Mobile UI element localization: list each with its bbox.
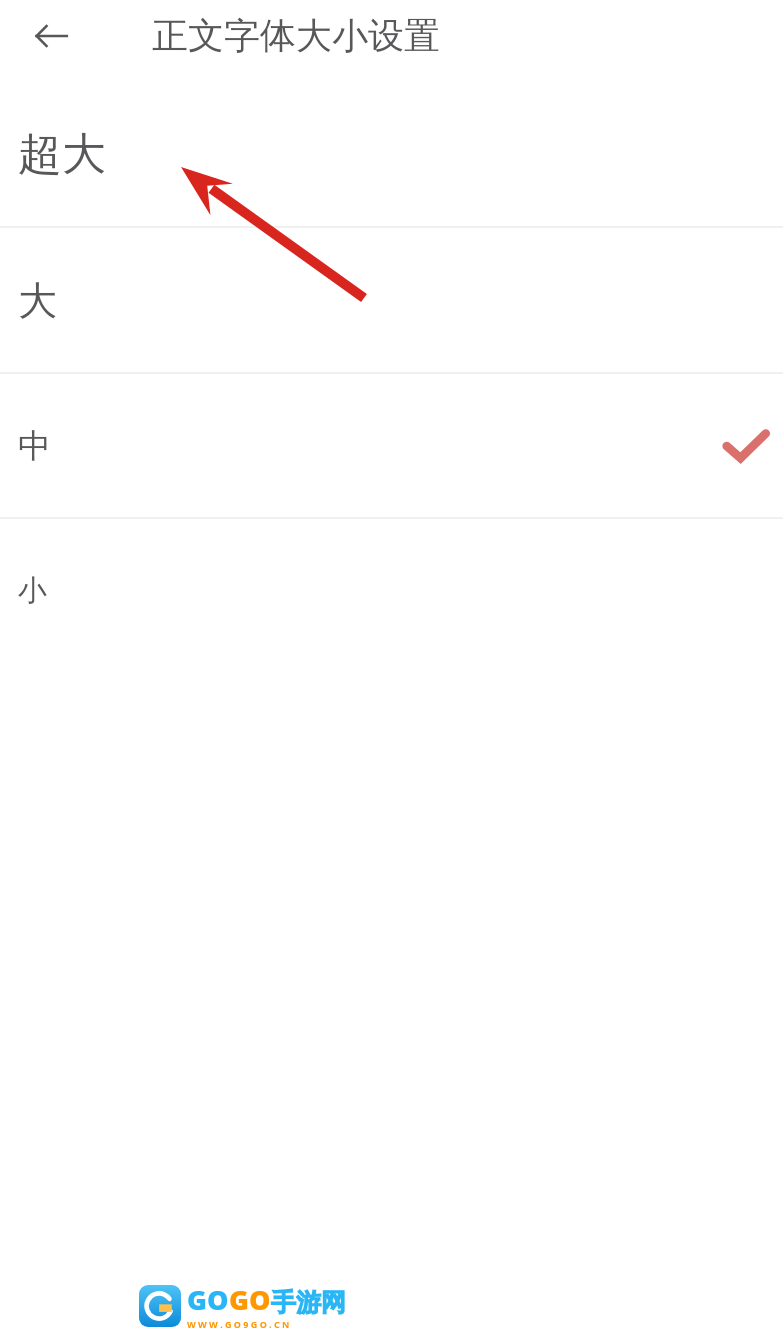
staticText: 小 (18, 572, 47, 609)
button[interactable]: Back (28, 13, 74, 59)
staticText: 正文字体大小设置 (152, 13, 440, 58)
staticText: 大 (18, 276, 57, 325)
button[interactable]: 中 (0, 374, 783, 517)
staticText: GO (187, 1281, 229, 1318)
other: Selected (725, 430, 767, 462)
staticText: W W W . G O 9 G O . C N (187, 1318, 290, 1329)
staticText: 手游网 (271, 1287, 346, 1318)
staticText: 超大 (18, 127, 106, 182)
button[interactable]: 超大 (0, 82, 783, 226)
staticText: 中 (18, 425, 51, 467)
button[interactable]: 小 (0, 519, 783, 662)
button[interactable]: 大 (0, 228, 783, 372)
staticText: GO (229, 1281, 271, 1318)
